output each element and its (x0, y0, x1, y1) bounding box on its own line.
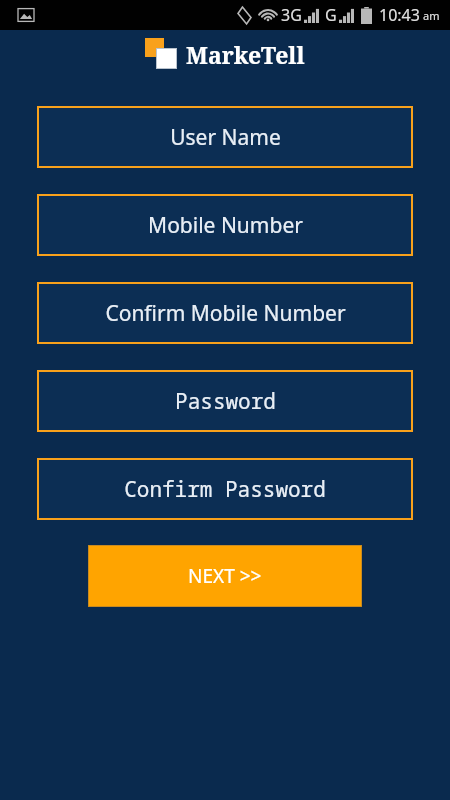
staticText: Confirm Mobile Number (105, 299, 346, 328)
button[interactable]: Confirm Password (37, 458, 413, 520)
staticText: 10:43 (379, 4, 420, 26)
staticText: MarkeTell (186, 39, 305, 70)
button[interactable]: User Name (37, 106, 413, 168)
staticText: Password (175, 387, 276, 416)
staticText: Mobile Number (148, 211, 303, 240)
staticText: Confirm Password (124, 475, 326, 504)
staticText: NEXT >> (188, 563, 262, 589)
staticText: 3G (281, 4, 302, 26)
staticText: User Name (170, 123, 281, 152)
button[interactable]: Next (88, 545, 362, 607)
button[interactable]: Mobile Number (37, 194, 413, 256)
button[interactable]: Confirm Mobile Number (37, 282, 413, 344)
staticText: am (423, 8, 440, 23)
button[interactable]: Password (37, 370, 413, 432)
staticText: G (325, 4, 337, 26)
